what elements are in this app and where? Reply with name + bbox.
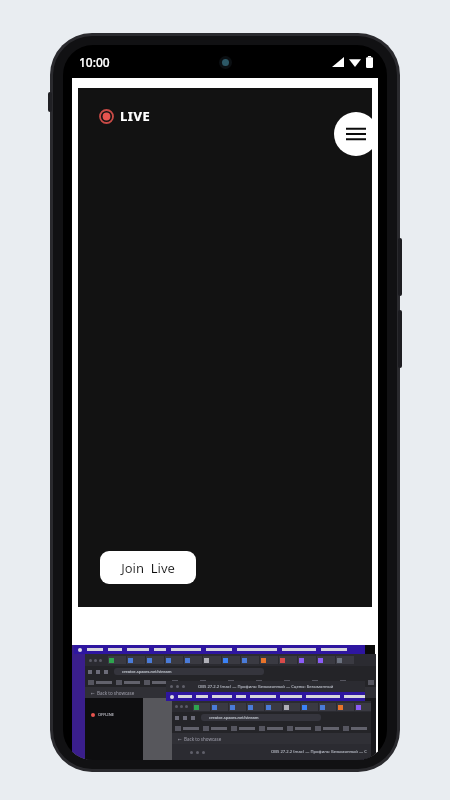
staticText: ← Back to showcase	[91, 690, 135, 696]
staticText: OFFLINE	[98, 712, 114, 717]
button[interactable]: Join Live	[100, 551, 196, 584]
button[interactable]: creator-spaces.net/stream	[72, 645, 365, 760]
button[interactable]: LIVE	[98, 105, 153, 127]
button[interactable]: Menu	[334, 112, 378, 156]
staticText: 10:00	[79, 54, 110, 70]
staticText: LIVE	[120, 107, 151, 125]
staticText: ← Back to showcase	[178, 736, 222, 742]
staticText: creator-spaces.net/stream	[209, 715, 259, 720]
staticText: OBS 27.2.2 (mac) — Профиль: Безымянный —…	[271, 749, 367, 755]
staticText: Join Live	[121, 559, 175, 577]
staticText: OBS 27.2.2 (mac) — Профиль: Безымянный —…	[198, 684, 334, 690]
staticText: creator-spaces.net/stream	[122, 669, 172, 674]
